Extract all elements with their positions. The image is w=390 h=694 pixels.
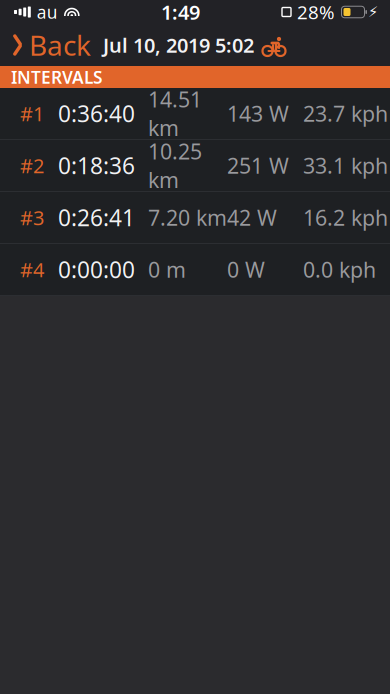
button[interactable]: #3 xyxy=(0,192,390,244)
button[interactable]: Back xyxy=(0,28,101,62)
staticText: 23.7 kph xyxy=(303,99,388,128)
button[interactable]: #2 xyxy=(0,140,390,192)
staticText: 16.2 kph xyxy=(303,203,388,232)
staticText: 143 W xyxy=(227,99,289,128)
staticText: #4 xyxy=(20,256,44,283)
staticText: 10.25 km xyxy=(148,137,202,194)
button[interactable]: #1 xyxy=(0,88,390,140)
staticText: 42 W xyxy=(227,203,277,232)
staticText: 0 m xyxy=(148,255,186,284)
staticText: #1 xyxy=(20,100,44,127)
staticText: ⚡︎ xyxy=(368,4,378,20)
staticText: 0:18:36 xyxy=(58,150,135,180)
staticText: 33.1 kph xyxy=(303,151,388,180)
staticText: 14.51 km xyxy=(148,85,202,142)
button[interactable]: #4 xyxy=(0,244,390,296)
staticText: INTERVALS xyxy=(11,65,103,88)
staticText: 0:00:00 xyxy=(58,254,135,284)
staticText: 0:36:40 xyxy=(58,98,135,128)
staticText: #2 xyxy=(20,152,44,179)
staticText: 28% xyxy=(297,0,335,24)
staticText: 0:26:41 xyxy=(58,202,135,232)
staticText: #3 xyxy=(20,204,44,231)
staticText: 0.0 kph xyxy=(303,255,376,284)
staticText: 0 W xyxy=(227,255,265,284)
staticText: 251 W xyxy=(227,151,289,180)
staticText: Back xyxy=(29,26,91,64)
staticText: Jul 10, 2019 5:02 xyxy=(103,32,254,58)
staticText: 7.20 km xyxy=(148,203,227,232)
staticText: au xyxy=(37,0,58,23)
staticText: 1:49 xyxy=(161,0,200,25)
